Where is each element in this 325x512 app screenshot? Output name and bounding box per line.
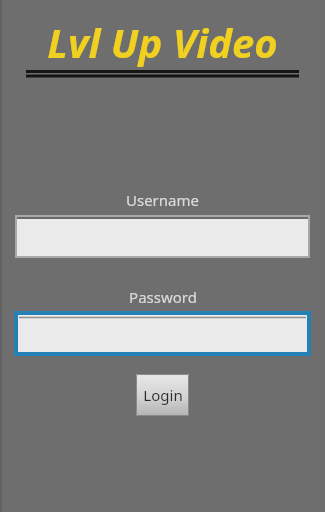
staticText: Login xyxy=(143,385,183,405)
button[interactable]: Username input xyxy=(16,216,309,257)
staticText: Password xyxy=(129,287,197,307)
button[interactable]: Login xyxy=(136,374,189,416)
staticText: Lvl Up Video xyxy=(47,15,278,69)
button[interactable]: Password input xyxy=(16,313,309,354)
staticText: Username xyxy=(126,190,199,210)
